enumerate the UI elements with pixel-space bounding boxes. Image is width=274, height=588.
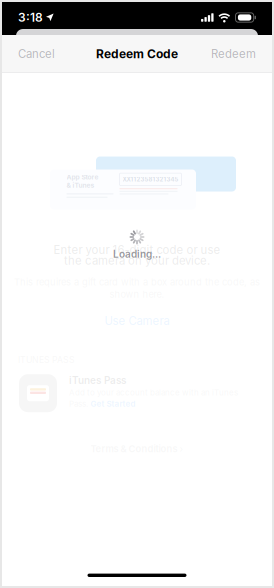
- staticText: Redeem: [211, 47, 256, 61]
- staticText: Use Camera: [104, 314, 169, 328]
- staticText: Redeem Code: [96, 47, 178, 61]
- staticText: the camera on your device.: [64, 254, 210, 267]
- staticText: Loading...: [113, 248, 161, 260]
- staticText: XX1123581321345: [122, 176, 178, 183]
- button[interactable]: Use Camera: [76, 306, 197, 336]
- button[interactable]: Cancel: [2, 37, 71, 71]
- staticText: Get Started: [90, 399, 135, 409]
- button[interactable]: iTunes Pass: [2, 374, 272, 412]
- button[interactable]: Redeem: [195, 37, 272, 71]
- staticText: Cancel: [18, 47, 55, 61]
- staticText: Enter your 16-digit code or use: [53, 243, 220, 257]
- staticText: & iTunes: [66, 181, 94, 189]
- staticText: 3:18: [18, 10, 43, 25]
- staticText: App Store: [66, 173, 98, 181]
- staticText: iTunes Pass: [69, 374, 126, 386]
